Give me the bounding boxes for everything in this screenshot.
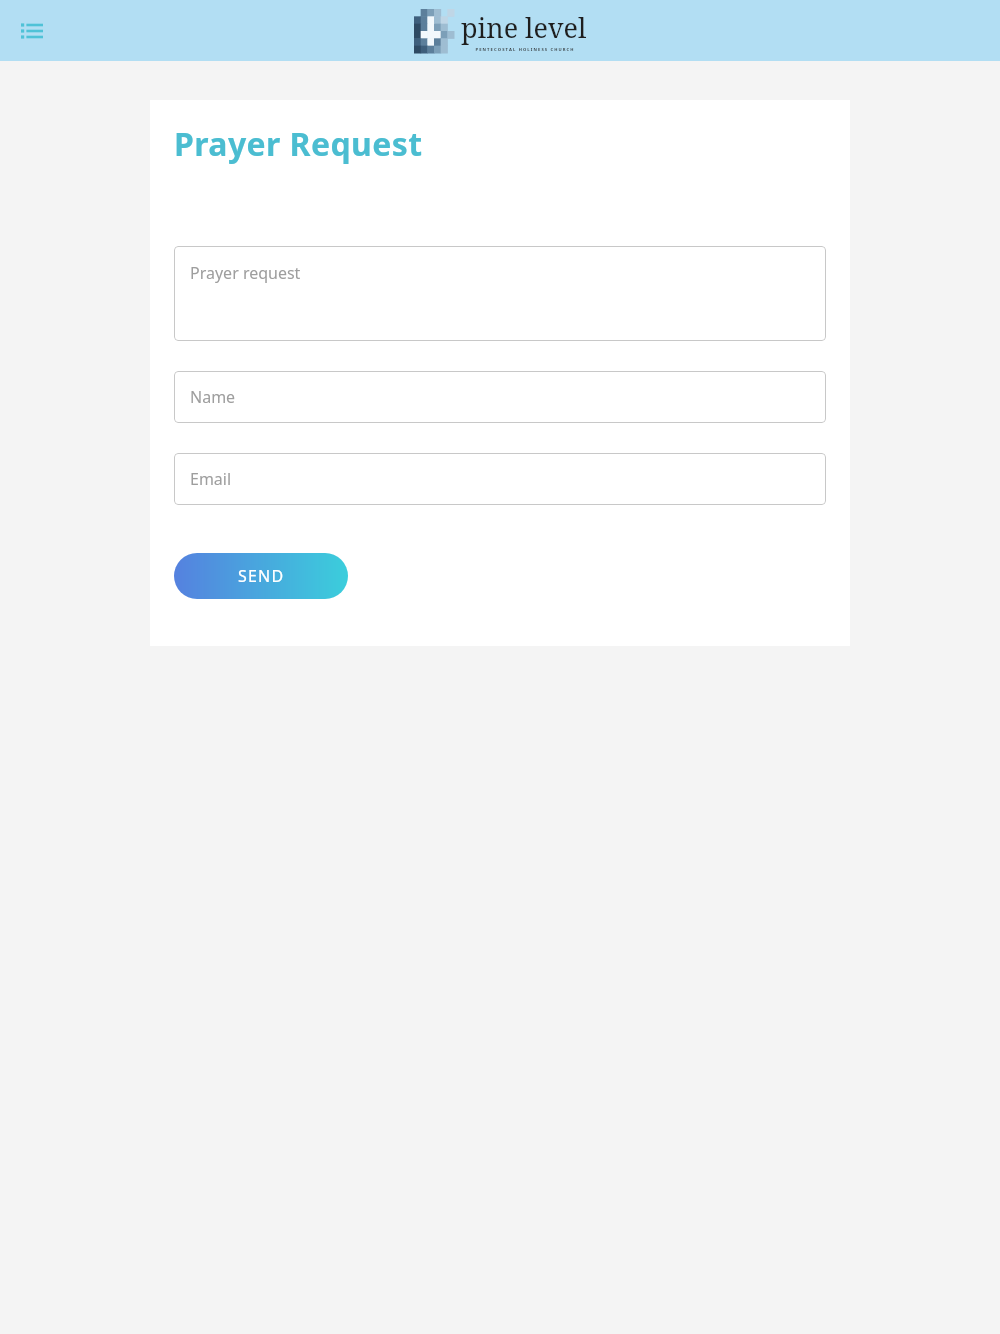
staticText: Prayer Request	[174, 122, 423, 166]
button[interactable]: Prayer request	[174, 246, 826, 341]
button[interactable]: Email	[174, 453, 826, 505]
button[interactable]: Name	[174, 371, 826, 423]
staticText: pine level	[461, 9, 587, 46]
staticText: P E N T E C O S T A L H O L I N E S S C …	[475, 47, 574, 53]
button[interactable]: SEND	[174, 553, 348, 599]
staticText: Name	[190, 386, 236, 408]
staticText: Prayer request	[190, 262, 301, 284]
staticText: Email	[190, 468, 232, 490]
button[interactable]: Open navigation menu	[12, 11, 52, 51]
staticText: SEND	[238, 565, 285, 587]
